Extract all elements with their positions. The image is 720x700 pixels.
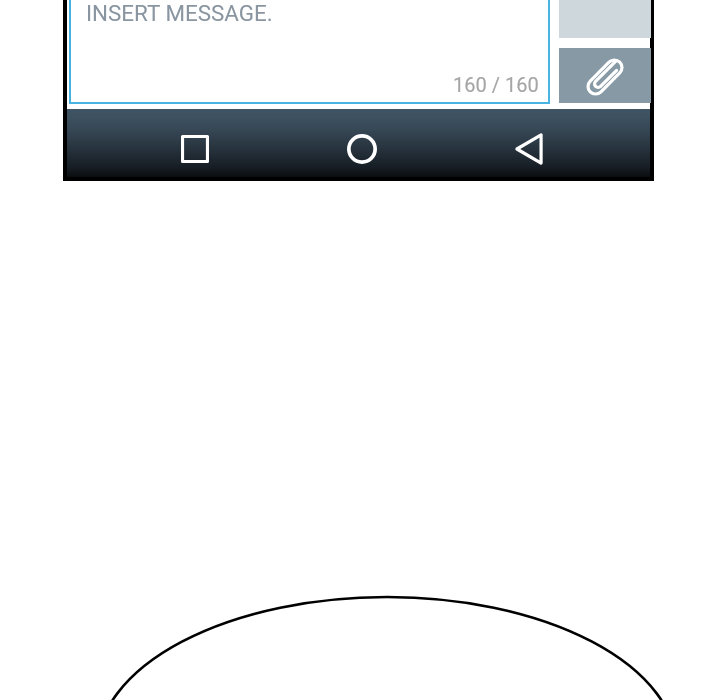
staticText: INSERT MESSAGE.	[86, 0, 273, 26]
staticText: 160 / 160	[453, 73, 539, 96]
button[interactable]: Back	[503, 123, 555, 175]
button[interactable]: Attach file	[559, 48, 651, 103]
button[interactable]: Message text field	[69, 0, 550, 104]
button[interactable]: Home	[336, 123, 388, 175]
button[interactable]: Recent apps	[169, 123, 221, 175]
